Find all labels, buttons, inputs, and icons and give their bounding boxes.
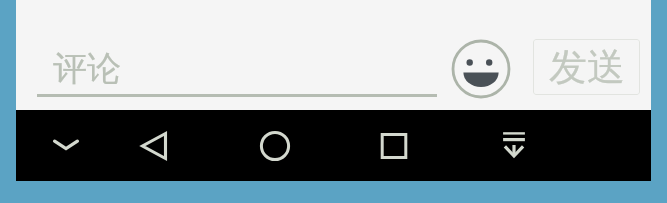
button[interactable]: Switch input method [490,122,538,170]
staticText: 评论 [53,47,121,90]
button[interactable]: Home [251,122,299,170]
button[interactable]: 发送 [533,39,640,95]
button[interactable]: Back [130,122,178,170]
staticText: 发送 [549,43,625,91]
button[interactable]: Recent apps [370,122,418,170]
button[interactable]: Hide keyboard [42,122,90,170]
button[interactable]: Emoji [450,38,512,100]
button[interactable]: 评论 [37,0,437,110]
